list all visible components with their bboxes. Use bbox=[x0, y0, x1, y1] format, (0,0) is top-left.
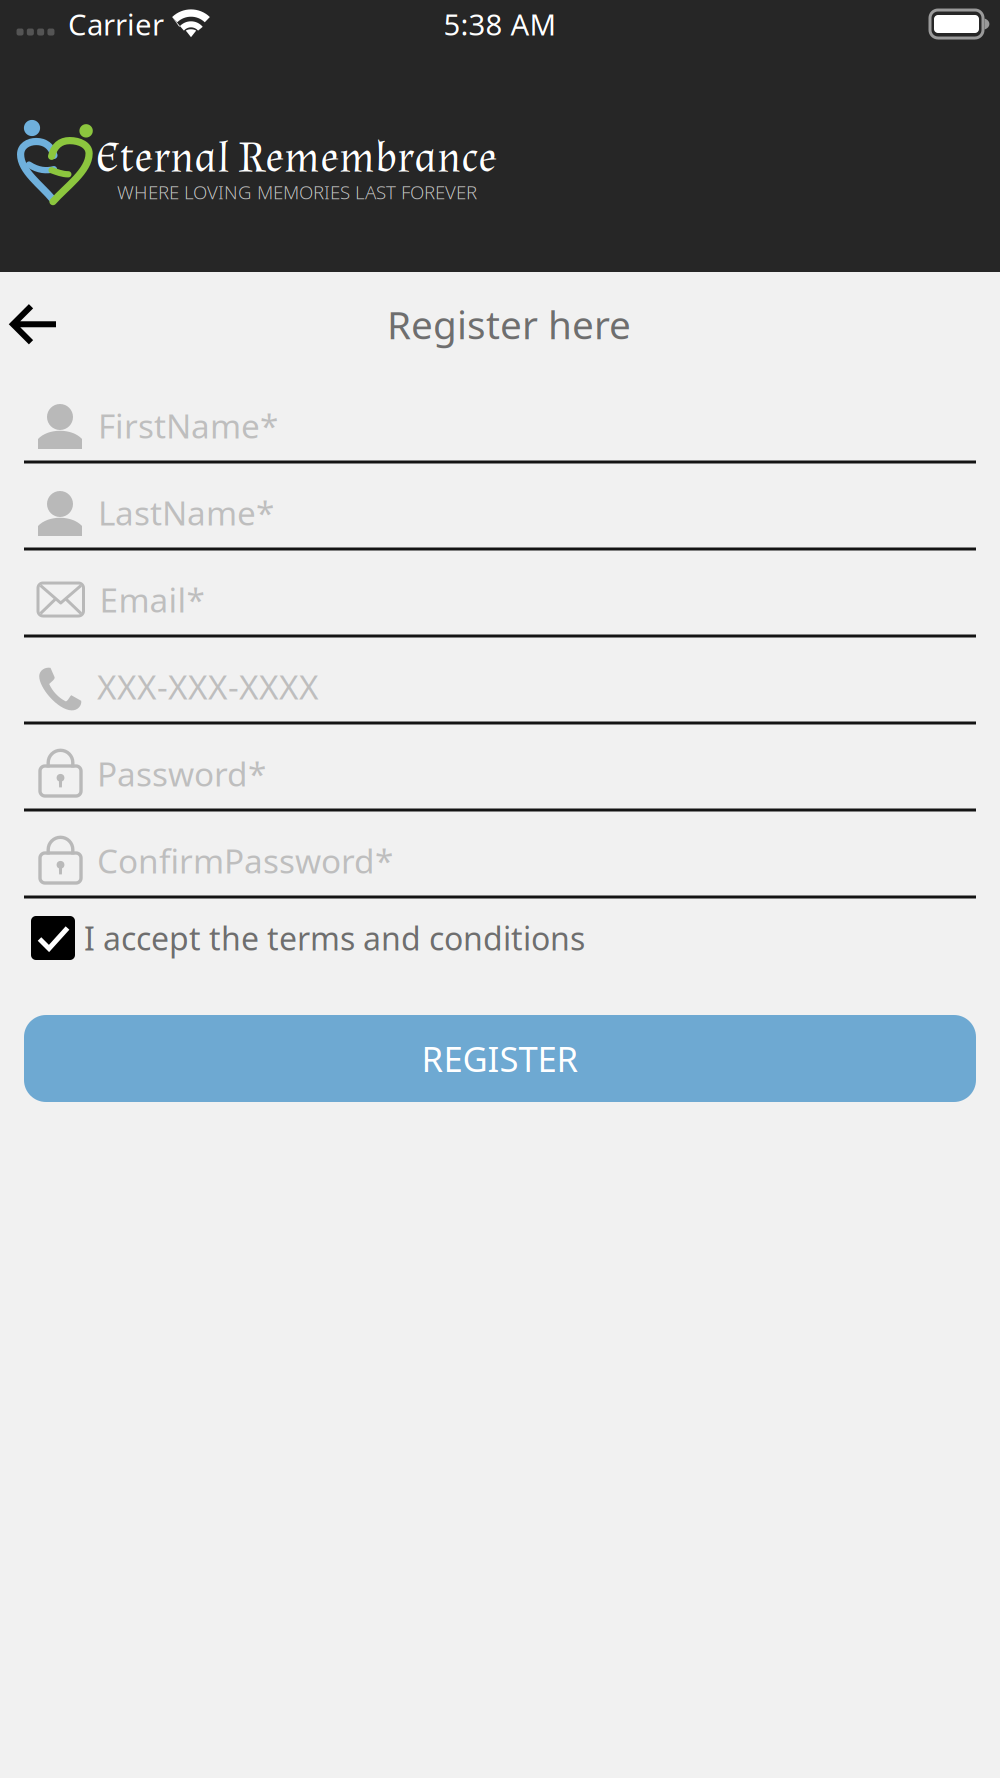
staticText: 5:38 AM bbox=[443, 4, 556, 43]
button[interactable]: Back bbox=[0, 282, 75, 366]
button[interactable]: I accept the terms and conditions bbox=[24, 898, 976, 960]
button[interactable]: FirstName* bbox=[24, 376, 976, 463]
staticText: WHERE LOVING MEMORIES LAST FOREVER bbox=[117, 180, 477, 204]
button[interactable]: Password* bbox=[24, 724, 976, 811]
button[interactable]: Email* bbox=[24, 550, 976, 637]
staticText: XXX-XXX-XXXX bbox=[97, 664, 319, 709]
staticText: Email* bbox=[99, 577, 204, 622]
staticText: Carrier bbox=[68, 4, 164, 43]
staticText: Eternal Remembrance bbox=[96, 130, 497, 187]
staticText: Register here bbox=[387, 299, 631, 350]
staticText: I accept the terms and conditions bbox=[84, 917, 585, 959]
button[interactable]: LastName* bbox=[24, 463, 976, 550]
staticText: REGISTER bbox=[421, 1035, 578, 1081]
button[interactable]: ConfirmPassword* bbox=[24, 811, 976, 898]
staticText: Password* bbox=[97, 751, 266, 796]
staticText: FirstName* bbox=[98, 403, 278, 448]
button[interactable]: XXX-XXX-XXXX bbox=[24, 637, 976, 724]
button[interactable]: REGISTER bbox=[24, 1015, 976, 1102]
staticText: LastName* bbox=[98, 490, 274, 535]
staticText: ConfirmPassword* bbox=[97, 838, 393, 883]
